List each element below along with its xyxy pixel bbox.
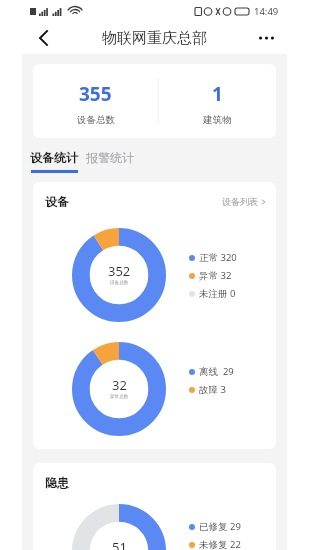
staticText: 未修复 22 bbox=[199, 538, 241, 550]
staticText: 设备列表 bbox=[222, 196, 258, 207]
button[interactable]: 设备统计 bbox=[23, 138, 85, 182]
staticText: 报警统计 bbox=[86, 150, 134, 165]
staticText: 异常总数 bbox=[110, 394, 129, 400]
button[interactable]: 报警统计 bbox=[79, 138, 141, 182]
staticText: 故障 3 bbox=[199, 383, 226, 396]
staticText: 建筑物 bbox=[203, 114, 232, 126]
staticText: 14:49 bbox=[254, 5, 279, 18]
button[interactable]: More options bbox=[251, 23, 281, 53]
staticText: 设备统计 bbox=[30, 150, 78, 165]
button[interactable]: 1 bbox=[159, 64, 276, 138]
staticText: 1 bbox=[212, 81, 223, 107]
button[interactable]: 355 bbox=[33, 64, 158, 138]
staticText: 设备 bbox=[45, 194, 69, 209]
staticText: 32 bbox=[112, 376, 127, 394]
staticText: 离线 29 bbox=[199, 365, 234, 378]
staticText: 物联网重庆总部 bbox=[102, 29, 207, 48]
button[interactable]: 设备列表 bbox=[222, 196, 266, 207]
staticText: 355 bbox=[79, 81, 112, 107]
staticText: 352 bbox=[108, 262, 131, 280]
staticText: 正常 320 bbox=[199, 251, 237, 264]
staticText: 51 bbox=[112, 538, 127, 550]
staticText: 异常 32 bbox=[199, 269, 232, 282]
staticText: 未注册 0 bbox=[199, 287, 236, 300]
staticText: 已修复 29 bbox=[199, 520, 241, 533]
staticText: 设备总数 bbox=[77, 114, 115, 126]
button[interactable]: Back bbox=[28, 23, 58, 53]
staticText: 设备总数 bbox=[110, 280, 129, 286]
staticText: 隐患 bbox=[45, 475, 69, 490]
